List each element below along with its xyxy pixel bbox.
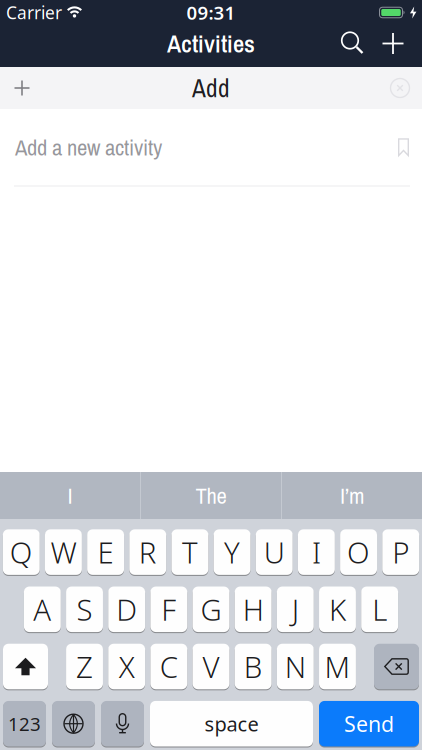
staticText: Carrier — [6, 1, 62, 24]
staticText: A — [33, 590, 51, 629]
staticText: Add — [192, 71, 230, 105]
button[interactable]: N — [277, 643, 314, 690]
staticText: 09:31 — [186, 0, 235, 25]
staticText: Send — [344, 709, 394, 738]
staticText: D — [116, 590, 137, 629]
staticText: E — [98, 533, 114, 572]
staticText: W — [50, 533, 76, 572]
staticText: P — [392, 533, 409, 572]
staticText: S — [76, 590, 92, 629]
button[interactable]: K — [319, 586, 356, 633]
staticText: M — [324, 647, 350, 686]
button[interactable]: V — [192, 643, 229, 690]
staticText: 123 — [8, 711, 41, 736]
staticText: Z — [76, 647, 93, 686]
button[interactable]: H — [235, 586, 272, 633]
button[interactable]: M — [319, 643, 356, 690]
button[interactable]: F — [150, 586, 187, 633]
staticText: B — [244, 647, 263, 686]
button[interactable]: X — [108, 643, 145, 690]
button[interactable]: G — [193, 586, 229, 633]
button[interactable]: S — [66, 586, 103, 633]
staticText: I — [67, 480, 72, 511]
button[interactable]: Add — [4, 67, 40, 109]
staticText: space — [204, 710, 258, 737]
staticText: N — [285, 647, 306, 686]
staticText: F — [161, 590, 176, 629]
button[interactable]: L — [361, 586, 398, 633]
button[interactable]: I’m — [282, 472, 422, 519]
staticText: T — [182, 533, 198, 572]
button[interactable]: T — [171, 529, 208, 575]
staticText: I’m — [340, 480, 364, 511]
button[interactable]: Shift — [3, 643, 48, 690]
button[interactable]: Send — [319, 700, 419, 747]
staticText: Activities — [167, 27, 255, 60]
button[interactable]: E — [87, 529, 124, 575]
staticText: G — [200, 590, 221, 629]
button[interactable]: Z — [66, 643, 103, 690]
staticText: J — [292, 590, 299, 629]
staticText: L — [372, 590, 387, 629]
button[interactable]: J — [277, 586, 314, 633]
staticText: Q — [10, 533, 33, 572]
button[interactable]: R — [129, 529, 166, 575]
button[interactable]: C — [150, 643, 187, 690]
button[interactable]: I — [0, 472, 140, 519]
button[interactable]: Add — [370, 22, 416, 64]
button[interactable]: P — [382, 529, 419, 575]
button[interactable]: Add a new activity — [0, 109, 398, 185]
staticText: Add a new activity — [15, 132, 162, 162]
button[interactable]: B — [235, 643, 272, 690]
button[interactable]: Dictation — [101, 700, 144, 747]
staticText: H — [243, 590, 264, 629]
button[interactable]: Search — [336, 22, 370, 64]
button[interactable]: 123 — [3, 700, 46, 747]
button[interactable]: Close — [380, 67, 420, 109]
button[interactable]: W — [45, 529, 82, 575]
staticText: U — [264, 533, 285, 572]
button[interactable]: Y — [214, 529, 250, 575]
staticText: The — [195, 480, 226, 511]
button[interactable]: space — [150, 700, 313, 747]
staticText: Y — [224, 533, 240, 572]
staticText: R — [139, 533, 157, 572]
button[interactable]: The — [141, 472, 281, 519]
button[interactable]: Q — [3, 529, 40, 575]
staticText: K — [329, 590, 346, 629]
button[interactable]: O — [340, 529, 377, 575]
staticText: C — [160, 647, 178, 686]
button[interactable]: Next keyboard — [52, 700, 95, 747]
button[interactable]: Delete — [374, 643, 419, 690]
button[interactable]: A — [24, 586, 61, 633]
staticText: O — [347, 533, 370, 572]
button[interactable]: U — [256, 529, 293, 575]
button[interactable]: D — [108, 586, 145, 633]
staticText: V — [202, 647, 219, 686]
staticText: X — [119, 647, 135, 686]
button[interactable]: Bookmark — [398, 109, 422, 185]
staticText: I — [312, 533, 321, 572]
button[interactable]: I — [298, 529, 335, 575]
